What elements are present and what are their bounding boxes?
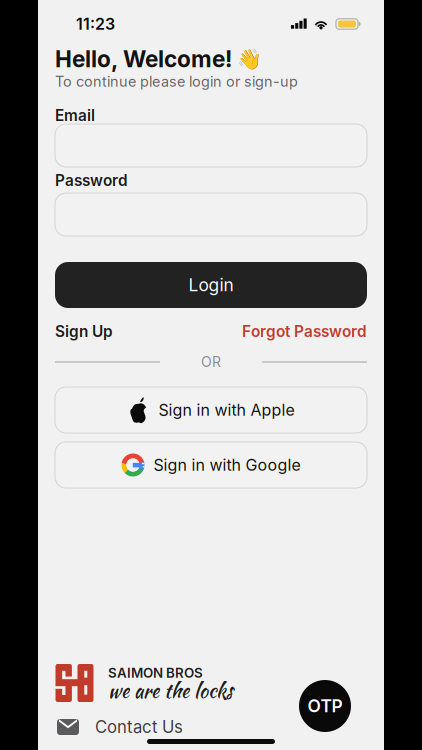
staticText: Contact Us [95,717,183,737]
staticText: SAIMON BROS [108,665,203,681]
staticText: OTP [307,695,342,716]
staticText: To continue please login or sign-up [55,73,298,90]
button[interactable]: Login [55,262,367,308]
staticText: 👋 [237,47,262,71]
button[interactable]: Forgot Password [242,322,367,341]
button[interactable]: OTP login [299,680,351,732]
staticText: Forgot Password [242,322,367,341]
staticText: Sign in with Apple [158,400,294,420]
button[interactable]: Contact Us [38,715,384,739]
button[interactable]: Sign in with Apple [55,387,367,433]
button[interactable]: Sign in with Google [55,442,367,488]
staticText: Sign Up [55,322,113,341]
button[interactable]: Sign Up [55,322,113,341]
staticText: we are the locks [108,676,233,705]
staticText: Login [188,274,233,295]
staticText: Password [55,171,128,190]
staticText: Hello, Welcome! [55,45,232,73]
staticText: Sign in with Google [153,455,300,475]
staticText: Email [55,106,95,125]
staticText: 11:23 [76,14,115,34]
staticText: OR [201,353,221,370]
